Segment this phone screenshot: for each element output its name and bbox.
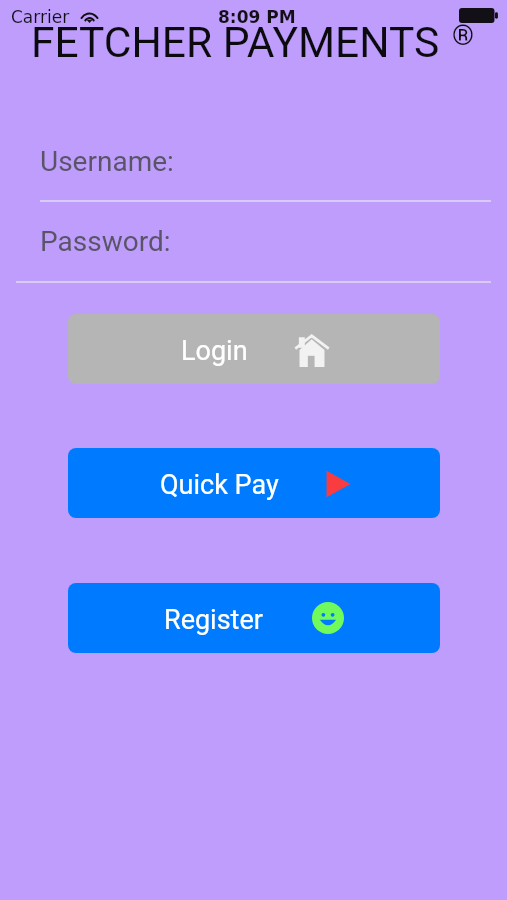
button[interactable]: Password: bbox=[16, 220, 491, 283]
other: Smile bbox=[312, 602, 344, 634]
staticText: Carrier bbox=[11, 7, 70, 27]
staticText: Password: bbox=[40, 225, 171, 258]
button[interactable]: Register bbox=[68, 583, 440, 653]
staticText: Login bbox=[181, 335, 248, 367]
staticText: FETCHER PAYMENTS bbox=[31, 18, 440, 68]
staticText: 8:09 PM bbox=[218, 7, 296, 27]
staticText: Username: bbox=[40, 145, 174, 178]
button[interactable]: Username: bbox=[40, 140, 491, 202]
staticText: Quick Pay bbox=[160, 469, 279, 501]
button[interactable]: Login bbox=[68, 314, 440, 384]
other: Home bbox=[296, 335, 328, 367]
staticText: ® bbox=[452, 19, 475, 52]
other: Play bbox=[327, 472, 348, 496]
staticText: Register bbox=[164, 604, 263, 636]
button[interactable]: Quick Pay bbox=[68, 448, 440, 518]
